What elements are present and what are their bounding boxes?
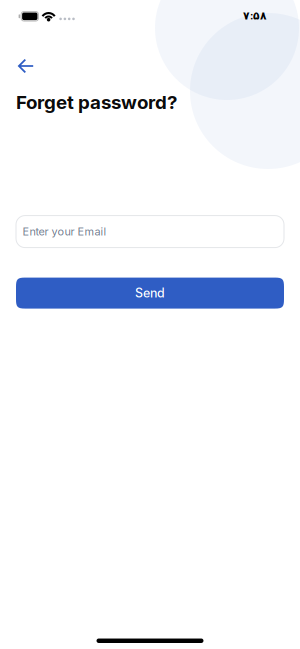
staticText: Forget password?	[16, 91, 177, 114]
staticText: Enter your Email	[22, 225, 106, 238]
staticText: ۷:۵۸	[243, 9, 267, 22]
button[interactable]: Back	[0, 54, 46, 79]
staticText: Send	[135, 286, 165, 301]
button[interactable]: Send	[16, 278, 284, 309]
